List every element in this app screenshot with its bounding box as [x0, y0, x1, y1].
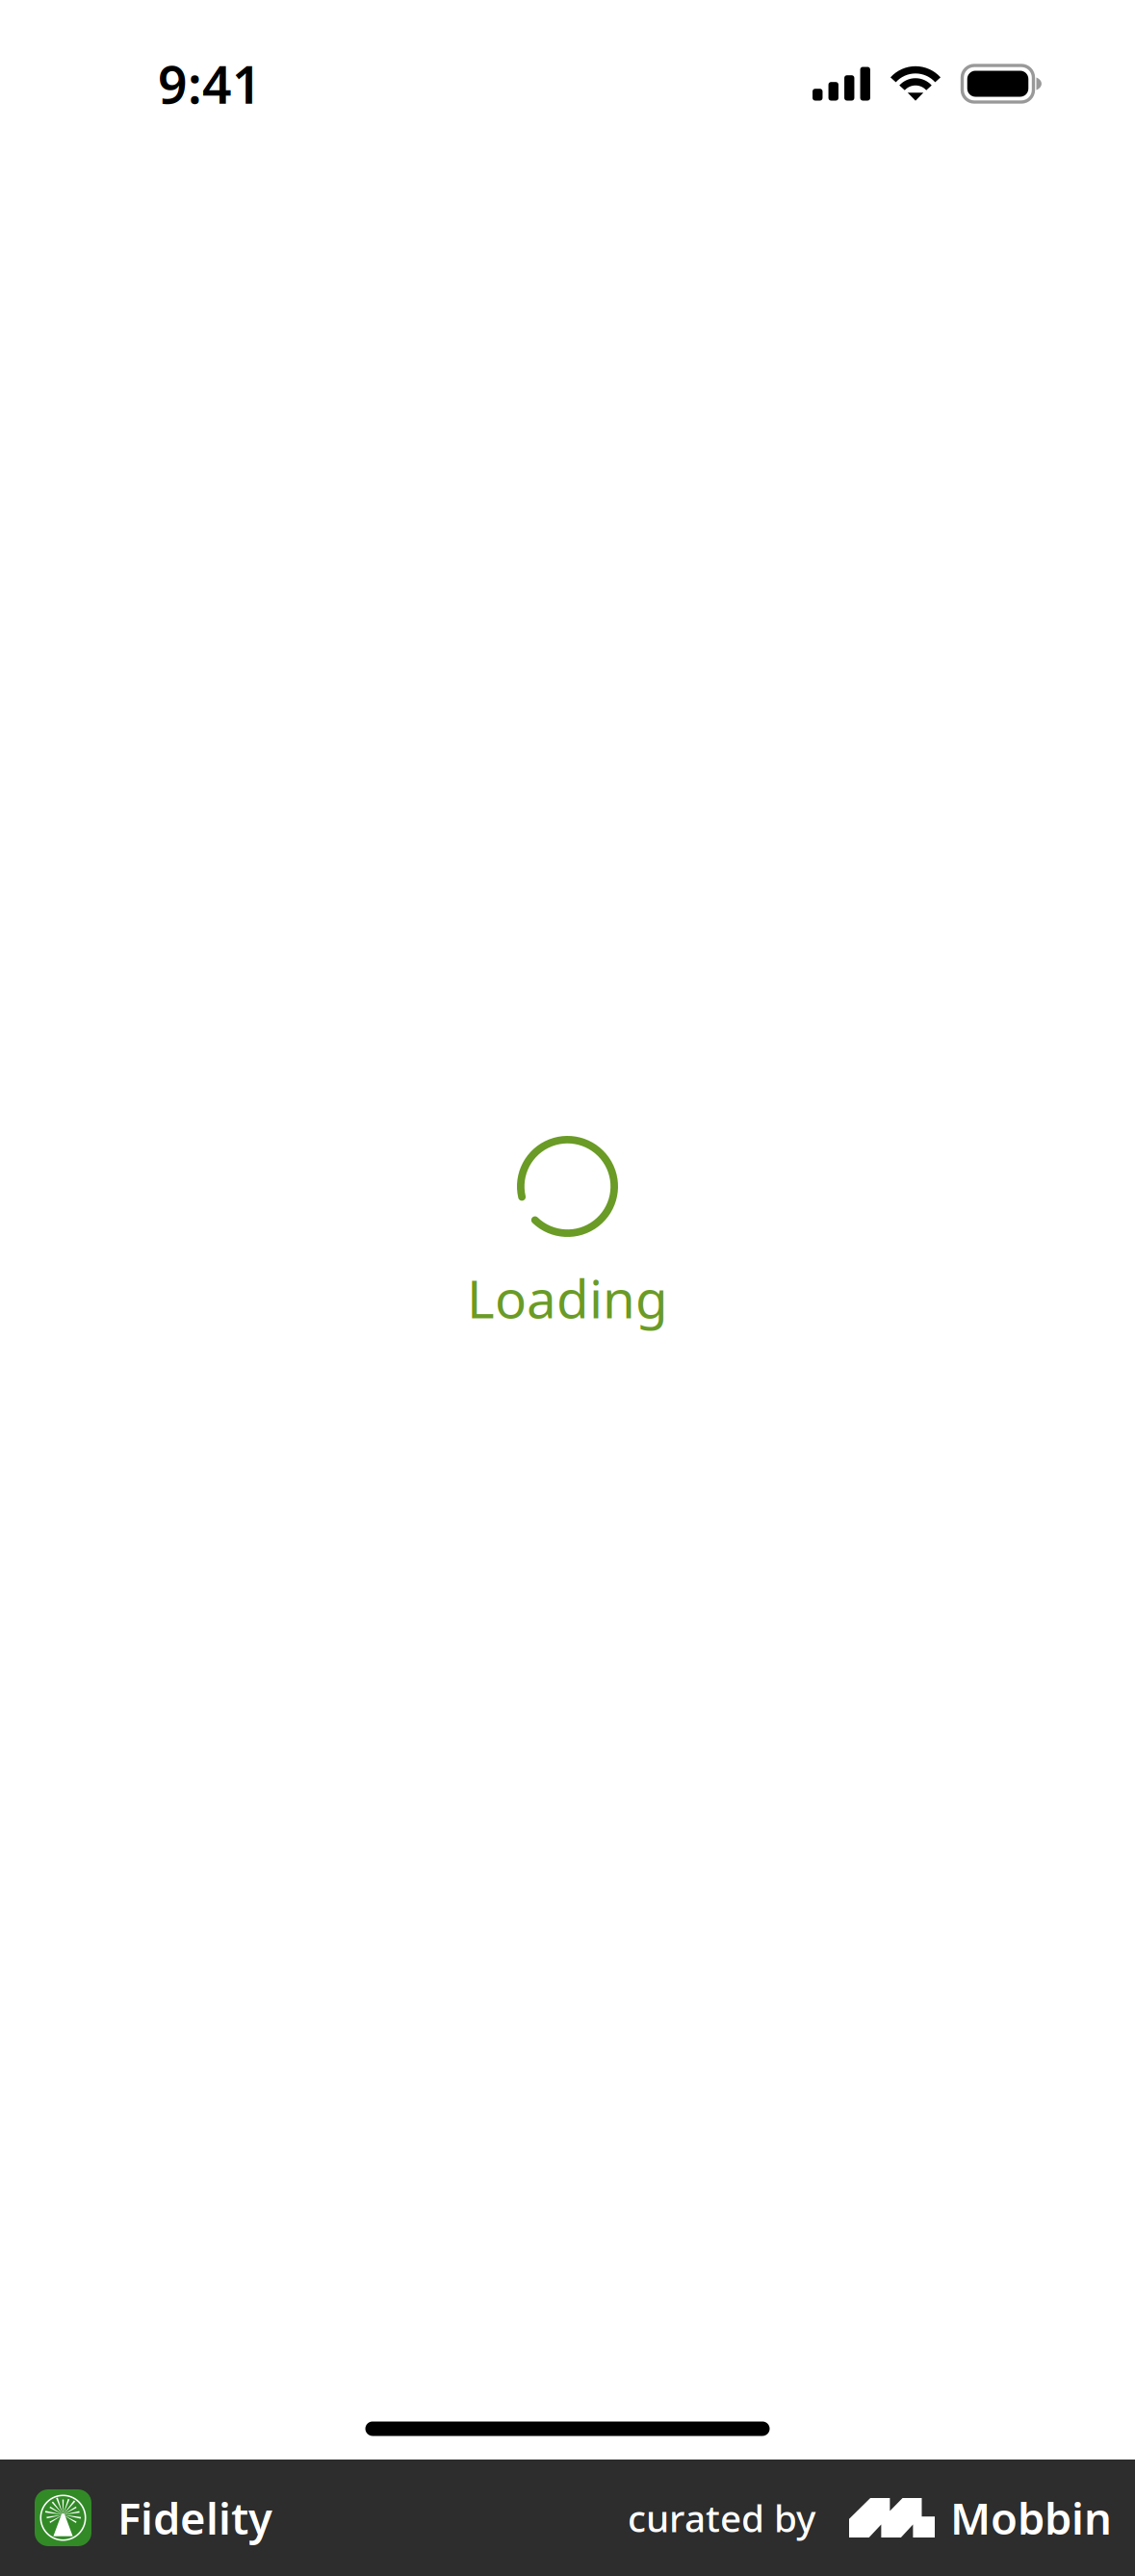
staticText: curated by: [628, 2493, 815, 2542]
staticText: Fidelity: [117, 2489, 272, 2547]
staticText: Loading: [467, 1263, 668, 1333]
staticText: Mobbin: [950, 2489, 1112, 2547]
staticText: 9:41: [158, 50, 262, 118]
